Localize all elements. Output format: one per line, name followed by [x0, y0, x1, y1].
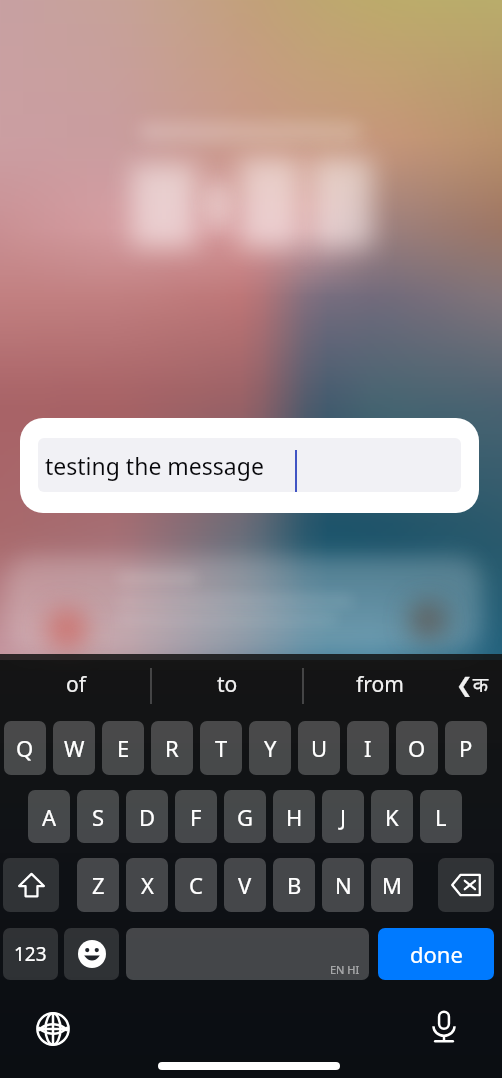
staticText: testing the message: [45, 450, 264, 481]
button[interactable]: K: [371, 790, 413, 843]
button[interactable]: testing the message: [38, 438, 461, 492]
staticText: ❮क: [456, 671, 489, 698]
button[interactable]: Voice input: [427, 1010, 461, 1044]
staticText: H: [286, 802, 303, 832]
button[interactable]: M: [371, 858, 413, 912]
staticText: R: [165, 733, 179, 763]
button[interactable]: H: [273, 790, 315, 843]
button[interactable]: Change keyboard language: [36, 1012, 70, 1046]
staticText: M: [382, 870, 402, 900]
staticText: N: [335, 870, 352, 900]
staticText: W: [64, 733, 85, 763]
button[interactable]: X: [126, 858, 168, 912]
button[interactable]: E: [102, 721, 144, 775]
staticText: Y: [264, 733, 277, 763]
staticText: B: [287, 870, 302, 900]
button[interactable]: L: [420, 790, 462, 843]
button[interactable]: Switch language: [446, 654, 498, 714]
button[interactable]: Y: [249, 721, 291, 775]
button[interactable]: done: [378, 928, 494, 980]
button[interactable]: G: [224, 790, 266, 843]
button[interactable]: J: [322, 790, 364, 843]
button[interactable]: A: [28, 790, 70, 843]
button[interactable]: I: [347, 721, 389, 775]
button[interactable]: Z: [77, 858, 119, 912]
staticText: G: [237, 802, 254, 832]
button[interactable]: Space: [126, 928, 369, 980]
staticText: K: [385, 802, 399, 832]
staticText: C: [189, 870, 203, 900]
button[interactable]: O: [396, 721, 438, 775]
button[interactable]: Emoji: [64, 928, 119, 980]
button[interactable]: S: [77, 790, 119, 843]
button[interactable]: B: [273, 858, 315, 912]
staticText: J: [340, 802, 347, 832]
staticText: from: [356, 670, 404, 699]
button[interactable]: C: [175, 858, 217, 912]
staticText: O: [408, 733, 426, 763]
staticText: Q: [16, 733, 34, 763]
staticText: D: [139, 802, 156, 832]
staticText: L: [435, 802, 447, 832]
staticText: U: [311, 733, 328, 763]
button[interactable]: to: [165, 654, 289, 714]
staticText: EN HI: [330, 962, 360, 977]
button[interactable]: P: [445, 721, 487, 775]
button[interactable]: Backspace: [438, 858, 494, 912]
staticText: P: [459, 733, 473, 763]
button[interactable]: 123: [3, 928, 58, 980]
staticText: 123: [14, 941, 47, 967]
staticText: E: [117, 733, 130, 763]
staticText: F: [190, 802, 202, 832]
staticText: T: [215, 733, 228, 763]
staticText: to: [217, 670, 238, 699]
button[interactable]: F: [175, 790, 217, 843]
button[interactable]: T: [200, 721, 242, 775]
staticText: of: [66, 670, 86, 699]
button[interactable]: R: [151, 721, 193, 775]
button[interactable]: W: [53, 721, 95, 775]
staticText: A: [42, 802, 57, 832]
button[interactable]: Shift: [3, 858, 59, 912]
staticText: V: [238, 870, 252, 900]
button[interactable]: D: [126, 790, 168, 843]
staticText: done: [410, 939, 463, 969]
button[interactable]: U: [298, 721, 340, 775]
button[interactable]: of: [14, 654, 138, 714]
staticText: S: [92, 802, 105, 832]
button[interactable]: V: [224, 858, 266, 912]
staticText: Z: [92, 870, 105, 900]
button[interactable]: from: [318, 654, 442, 714]
button[interactable]: Q: [4, 721, 46, 775]
staticText: X: [141, 870, 154, 900]
staticText: I: [364, 733, 372, 763]
button[interactable]: N: [322, 858, 364, 912]
